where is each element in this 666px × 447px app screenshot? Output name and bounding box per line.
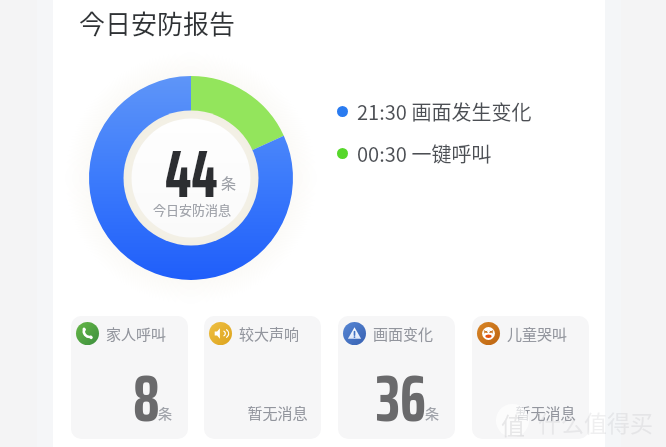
staticText: 暂无消息 (247, 402, 308, 424)
staticText: 今日安防报告 (79, 4, 236, 42)
other: 家人呼叫 (76, 322, 99, 345)
staticText: 暂无消息 (515, 402, 576, 424)
staticText: 儿童哭叫 (507, 323, 568, 345)
staticText: 条 (158, 403, 172, 423)
button[interactable]: 较大声响 (204, 316, 321, 439)
button[interactable]: 画面变化 (338, 316, 455, 439)
other: 较大声响 (209, 322, 232, 345)
button[interactable]: 00:30 一键呼叫 (337, 139, 492, 168)
staticText: 条 (425, 403, 439, 423)
staticText: 00:30 一键呼叫 (357, 139, 492, 168)
staticText: 今日安防消息 (153, 200, 232, 219)
staticText: 什么值得买 (538, 405, 653, 438)
staticText: 画面变化 (373, 323, 434, 345)
staticText: 条 (221, 172, 237, 194)
staticText: 44 (165, 121, 218, 226)
staticText: 21:30 画面发生变化 (357, 97, 532, 126)
staticText: 值 (501, 407, 525, 442)
staticText: 8 (133, 346, 160, 439)
button[interactable]: 儿童哭叫 (472, 316, 589, 439)
staticText: 较大声响 (239, 323, 300, 345)
other: 儿童哭叫 (477, 322, 500, 345)
button[interactable]: 21:30 画面发生变化 (337, 97, 532, 126)
staticText: 家人呼叫 (106, 323, 167, 345)
button[interactable]: 家人呼叫 (71, 316, 188, 439)
other: 画面变化 (343, 322, 366, 345)
staticText: 36 (376, 346, 426, 439)
